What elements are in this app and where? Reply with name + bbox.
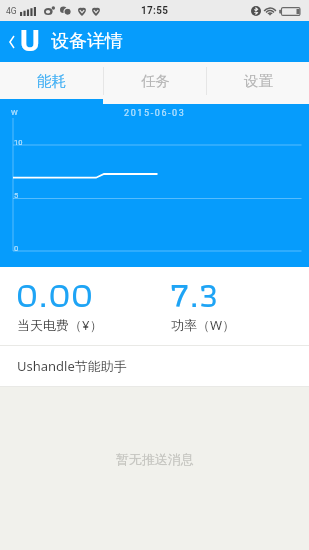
staticText: W xyxy=(11,108,18,117)
staticText: 5 xyxy=(14,191,19,200)
staticText: 0 xyxy=(14,244,19,253)
staticText: 设置 xyxy=(244,72,273,90)
staticText: 能耗 xyxy=(37,72,66,90)
button[interactable]: 任务 xyxy=(104,62,206,104)
staticText: 4G xyxy=(6,6,17,16)
staticText: 任务 xyxy=(141,72,170,90)
staticText: U xyxy=(20,23,40,58)
staticText: 暂无推送消息 xyxy=(116,451,194,467)
button[interactable]: 能耗 xyxy=(0,62,103,104)
staticText: 0.00 xyxy=(16,266,94,324)
staticText: 17:55 xyxy=(141,5,169,17)
staticText: Ushandle节能助手 xyxy=(17,357,127,375)
staticText: 设备详情 xyxy=(51,30,123,53)
staticText: 10 xyxy=(14,138,23,147)
button[interactable]: Back xyxy=(0,21,22,62)
button[interactable]: Ushandle节能助手 xyxy=(0,346,309,386)
staticText: 7.3 xyxy=(170,266,219,324)
staticText: 2015-06-03 xyxy=(124,108,186,119)
staticText: 功率（W） xyxy=(171,316,236,334)
staticText: 当天电费（¥） xyxy=(17,316,103,334)
button[interactable]: 设置 xyxy=(207,62,309,104)
